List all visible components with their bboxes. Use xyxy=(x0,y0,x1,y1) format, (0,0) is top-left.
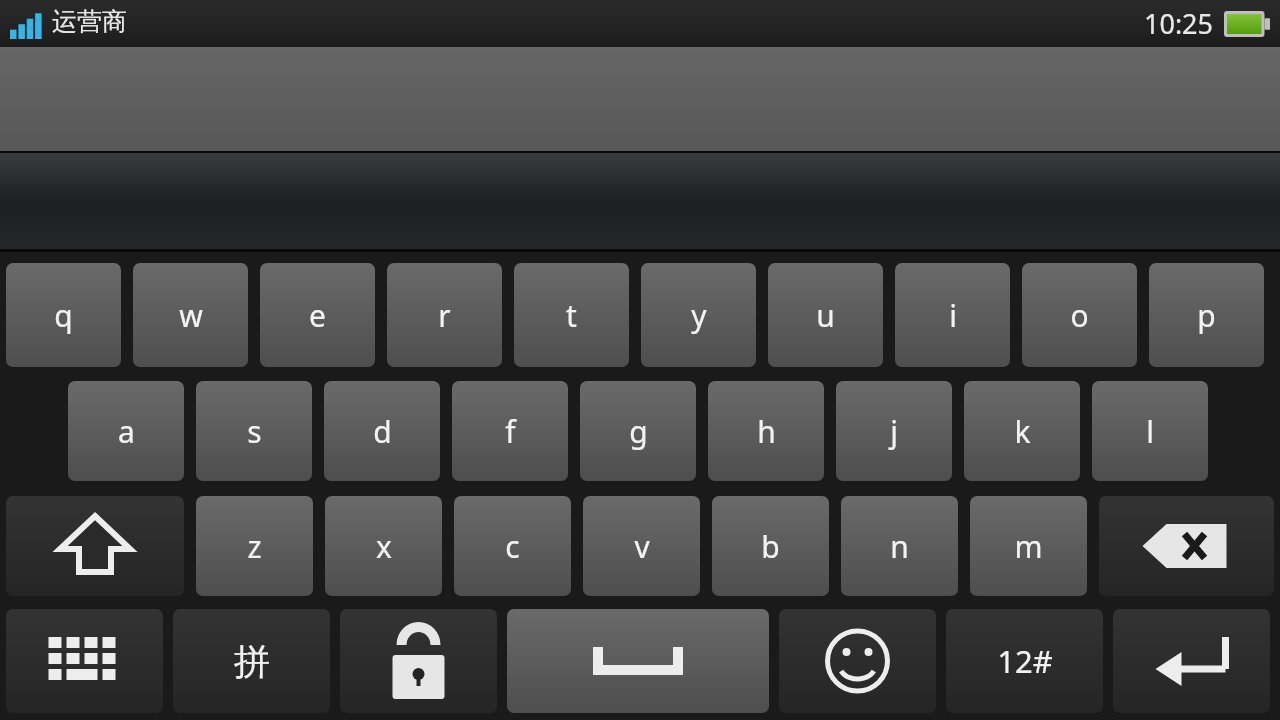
staticText: 运营商 xyxy=(52,6,127,37)
button[interactable]: u xyxy=(768,263,883,367)
button[interactable]: 拼 xyxy=(173,609,330,713)
staticText: k xyxy=(1014,411,1031,452)
staticText: s xyxy=(247,411,262,452)
button[interactable]: h xyxy=(708,381,824,481)
staticText: a xyxy=(118,411,135,452)
button[interactable]: m xyxy=(970,496,1087,596)
button[interactable]: v xyxy=(583,496,700,596)
button[interactable]: Shift xyxy=(6,496,184,596)
button[interactable]: e xyxy=(260,263,375,367)
staticText: r xyxy=(438,295,451,336)
staticText: u xyxy=(816,295,835,336)
staticText: i xyxy=(949,295,957,336)
button[interactable]: i xyxy=(895,263,1010,367)
staticText: n xyxy=(890,526,909,567)
staticText: m xyxy=(1014,526,1043,567)
button[interactable]: z xyxy=(196,496,313,596)
staticText: q xyxy=(54,295,73,336)
button[interactable]: Switch keyboard xyxy=(6,609,163,713)
button[interactable]: Lock xyxy=(340,609,497,713)
button[interactable]: d xyxy=(324,381,440,481)
staticText: y xyxy=(691,295,707,336)
staticText: l xyxy=(1146,411,1154,452)
button[interactable]: g xyxy=(580,381,696,481)
staticText: p xyxy=(1197,295,1216,336)
staticText: 12# xyxy=(997,640,1053,682)
staticText: c xyxy=(505,526,520,567)
staticText: 10:25 xyxy=(1144,5,1214,42)
button[interactable]: j xyxy=(836,381,952,481)
staticText: h xyxy=(757,411,776,452)
staticText: e xyxy=(309,295,326,336)
staticText: o xyxy=(1070,295,1089,336)
button[interactable]: 12# xyxy=(946,609,1103,713)
button[interactable]: s xyxy=(196,381,312,481)
button[interactable]: b xyxy=(712,496,829,596)
button[interactable]: y xyxy=(641,263,756,367)
staticText: f xyxy=(505,411,516,452)
staticText: z xyxy=(247,526,262,567)
button[interactable]: q xyxy=(6,263,121,367)
staticText: d xyxy=(373,411,392,452)
staticText: j xyxy=(890,411,898,452)
staticText: x xyxy=(376,526,392,567)
button[interactable]: o xyxy=(1022,263,1137,367)
button[interactable]: Emoji xyxy=(779,609,936,713)
staticText: 拼 xyxy=(234,639,270,684)
staticText: t xyxy=(566,295,577,336)
staticText: g xyxy=(629,411,648,452)
button[interactable]: Backspace xyxy=(1099,496,1274,596)
button[interactable]: x xyxy=(325,496,442,596)
button[interactable]: n xyxy=(841,496,958,596)
button[interactable]: l xyxy=(1092,381,1208,481)
button[interactable]: Enter xyxy=(1113,609,1270,713)
button[interactable]: a xyxy=(68,381,184,481)
button[interactable]: k xyxy=(964,381,1080,481)
button[interactable]: r xyxy=(387,263,502,367)
staticText: w xyxy=(179,295,203,336)
button[interactable]: t xyxy=(514,263,629,367)
button[interactable]: c xyxy=(454,496,571,596)
staticText: v xyxy=(634,526,650,567)
button[interactable]: p xyxy=(1149,263,1264,367)
button[interactable]: Space xyxy=(507,609,769,713)
button[interactable]: w xyxy=(133,263,248,367)
button[interactable]: f xyxy=(452,381,568,481)
staticText: b xyxy=(761,526,780,567)
